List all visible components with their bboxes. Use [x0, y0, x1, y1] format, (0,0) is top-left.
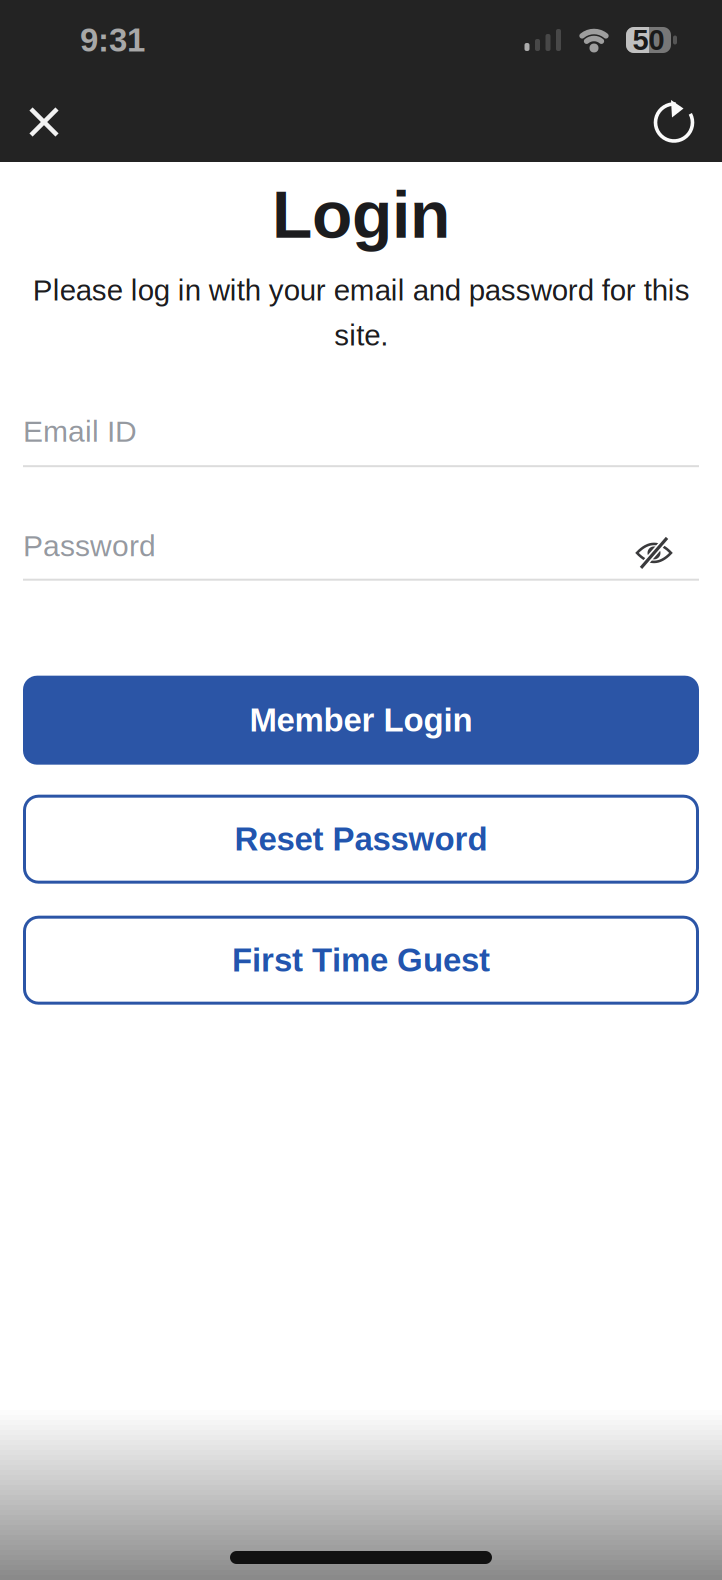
button[interactable]: First Time Guest: [23, 916, 699, 1005]
staticText: 9:31: [80, 22, 145, 58]
staticText: Email ID: [23, 415, 137, 448]
staticText: Login: [272, 178, 450, 252]
staticText: Member Login: [249, 702, 472, 739]
staticText: Please log in with your email and passwo…: [32, 274, 689, 352]
button[interactable]: Reset Password: [23, 795, 699, 884]
staticText: 50: [632, 24, 664, 56]
button[interactable]: [0, 107, 57, 135]
staticText: Reset Password: [234, 821, 487, 858]
button[interactable]: [230, 1551, 492, 1564]
staticText: Password: [23, 529, 156, 563]
staticText: First Time Guest: [232, 942, 490, 979]
button[interactable]: Member Login: [23, 676, 699, 765]
button[interactable]: [651, 96, 722, 145]
